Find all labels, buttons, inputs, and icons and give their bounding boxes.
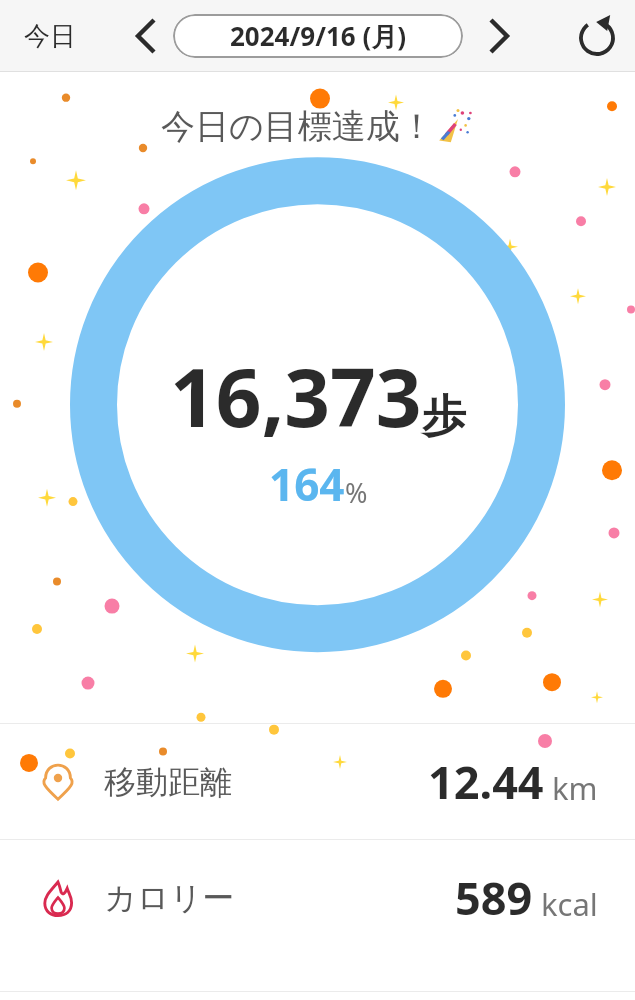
button[interactable]: Next day [475, 12, 523, 60]
button[interactable]: 移動距離 [0, 724, 635, 839]
button[interactable]: Refresh [571, 10, 623, 62]
staticText: 589 [455, 867, 533, 928]
button[interactable]: Previous day [122, 12, 170, 60]
staticText: kcal [541, 883, 598, 925]
staticText: 歩 [422, 389, 466, 444]
staticText: 2024/9/16 (月) [230, 18, 407, 54]
staticText: 今日の目標達成！ [161, 105, 434, 148]
staticText: % [345, 474, 368, 511]
staticText: 16,373 [170, 341, 422, 450]
staticText: 12.44 [428, 751, 544, 812]
button[interactable]: カロリー [0, 840, 635, 955]
staticText: カロリー [104, 878, 235, 918]
button[interactable]: 2024/9/16 (月) [173, 14, 463, 58]
staticText: km [552, 767, 598, 809]
staticText: 164 [269, 454, 345, 514]
staticText: 移動距離 [104, 762, 232, 802]
staticText: 今日 [24, 20, 76, 53]
button[interactable]: 今日 [12, 12, 88, 61]
